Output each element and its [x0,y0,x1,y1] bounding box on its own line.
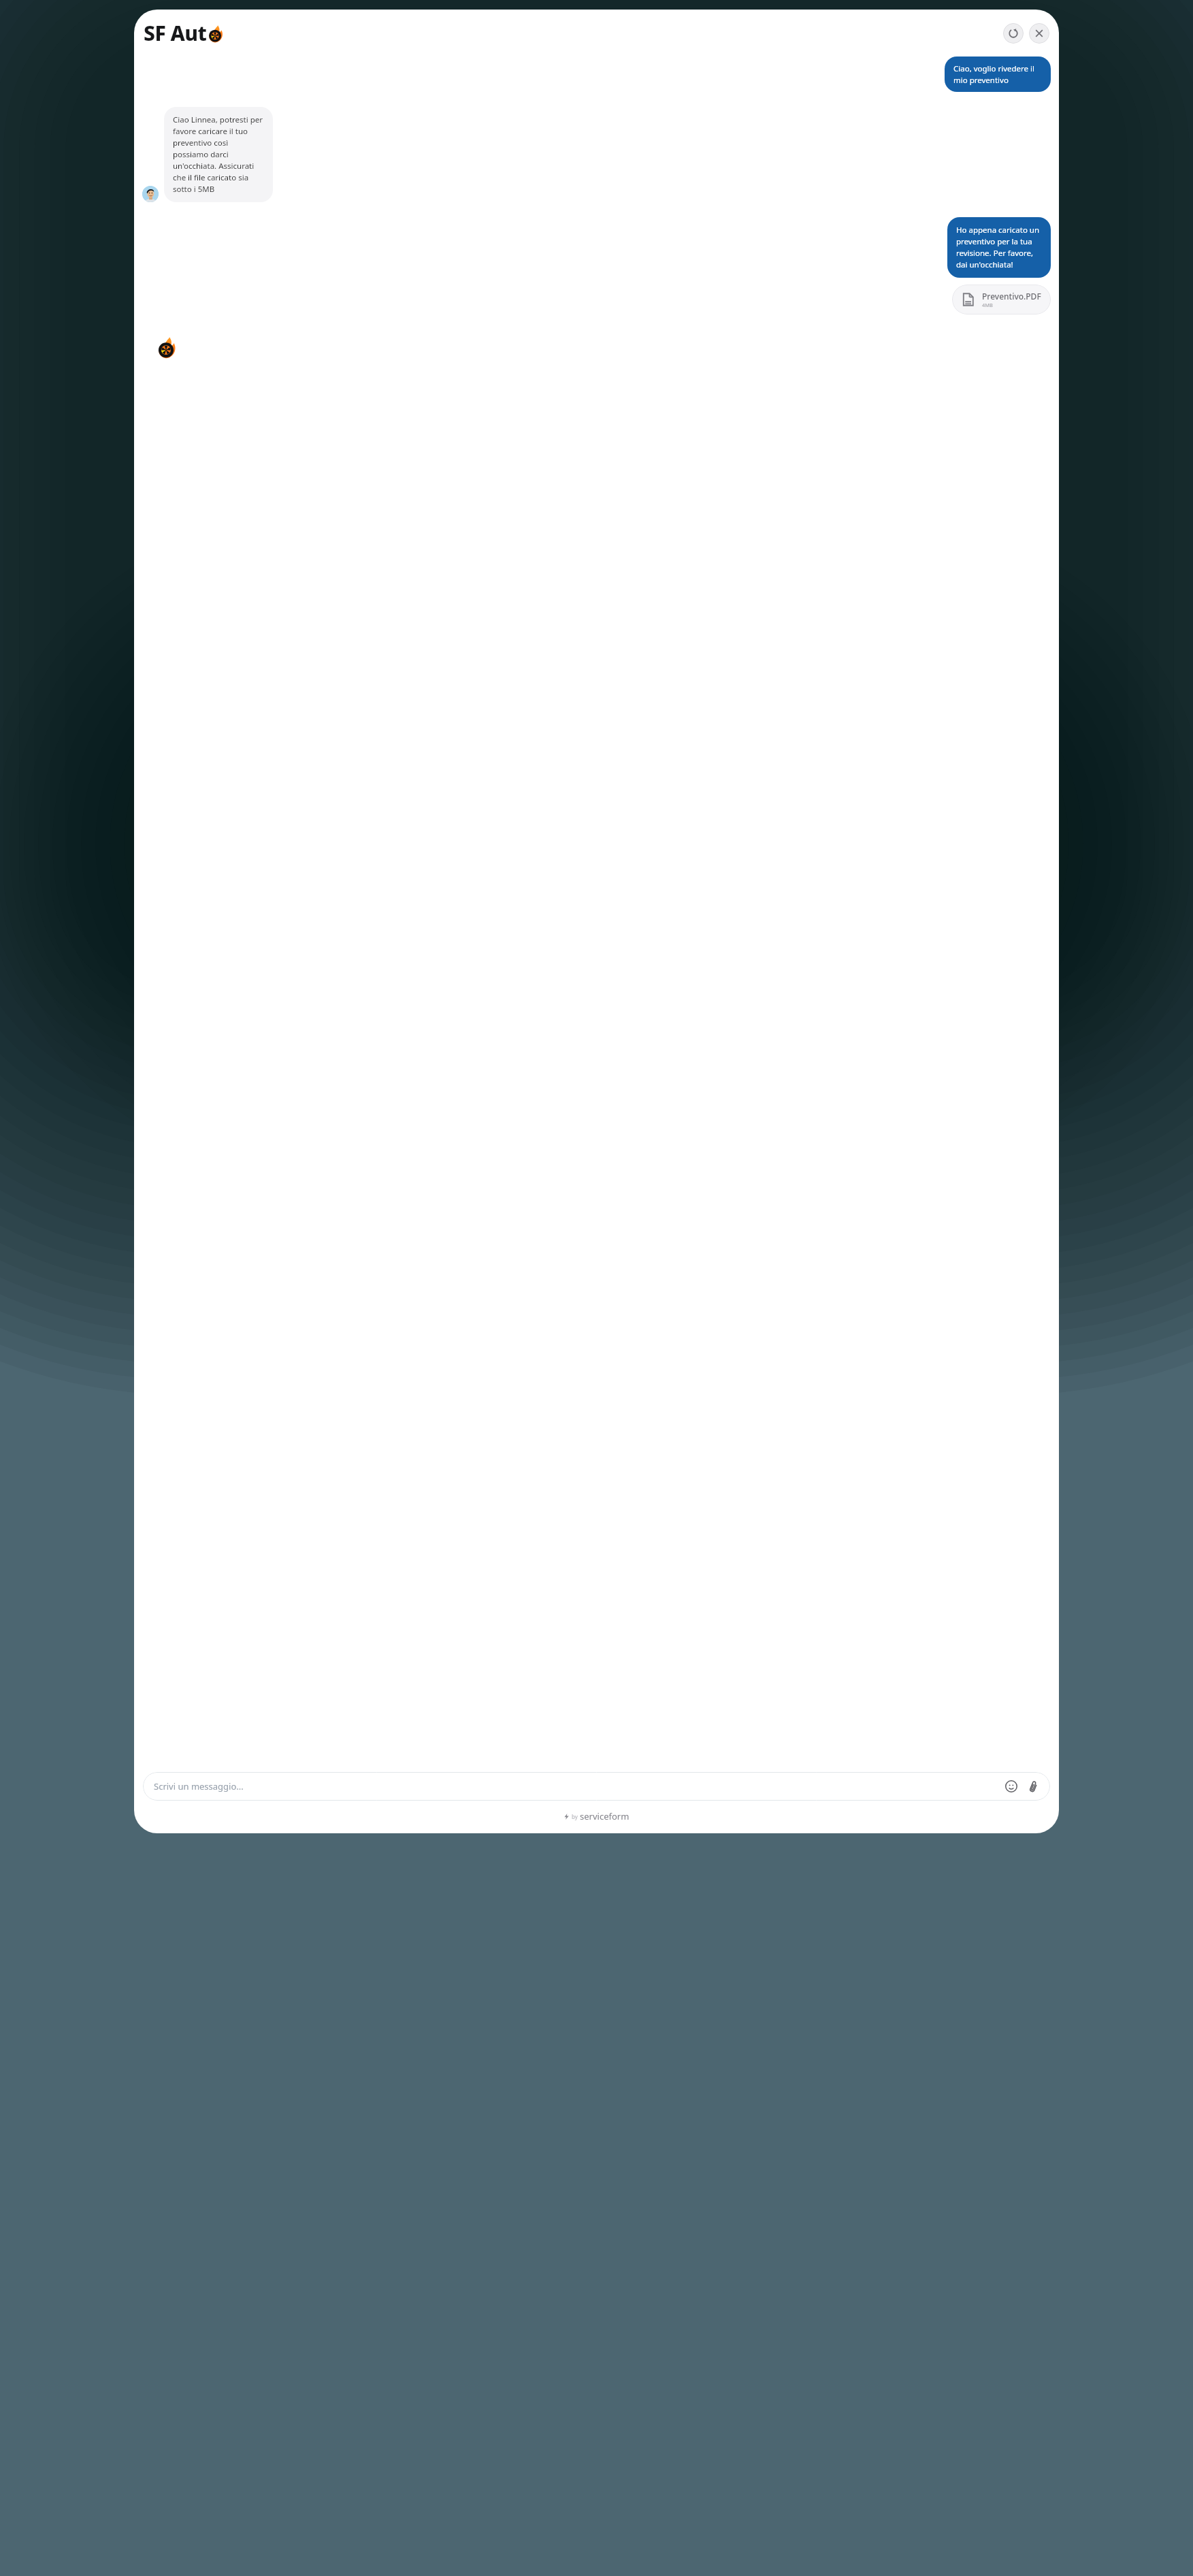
staticText: Ciao Linnea, potresti per favore caricar… [173,114,264,195]
button[interactable]: Refresh [1003,23,1024,44]
button[interactable]: Ciao, voglio rivedere il mio preventivo [945,57,1051,92]
button[interactable]: Ho appena caricato un preventivo per la … [947,217,1051,278]
staticText: by [572,1813,578,1820]
staticText: Preventivo.PDF [982,291,1041,302]
button[interactable]: Attach file [1024,1777,1042,1795]
staticText: serviceform [580,1810,630,1822]
button[interactable]: Scrivi un messaggio... [143,1772,1050,1801]
staticText: Scrivi un messaggio... [154,1780,244,1792]
button[interactable]: Preventivo.PDF [952,285,1051,315]
button[interactable]: Emoji [1002,1777,1020,1795]
button[interactable]: Close [1029,23,1049,44]
staticText: 4MB [982,302,993,308]
staticText: SF Aut [144,19,207,47]
other: Agent avatar [142,186,159,202]
staticText: Ciao, voglio rivedere il mio preventivo [953,63,1042,85]
button[interactable]: Ciao Linnea, potresti per favore caricar… [164,107,273,202]
staticText: Ho appena caricato un preventivo per la … [956,225,1042,270]
button[interactable]: Open chat [148,330,184,366]
